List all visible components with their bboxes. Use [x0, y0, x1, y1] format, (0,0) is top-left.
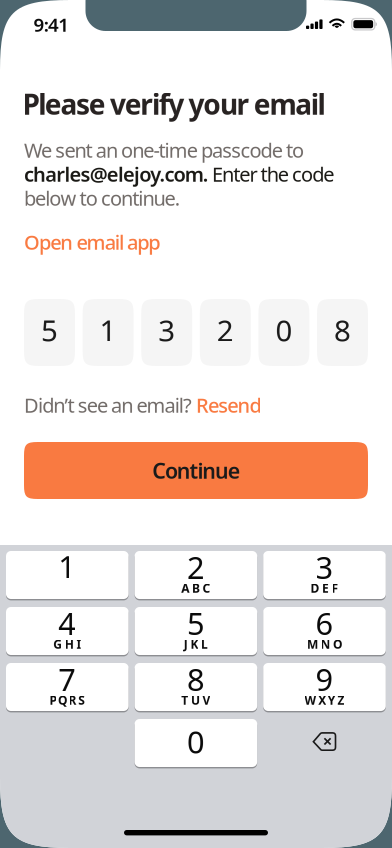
button[interactable]: 9	[263, 663, 386, 712]
button[interactable]: 5	[135, 607, 257, 656]
staticText: Z	[337, 692, 344, 708]
button[interactable]: 7	[6, 663, 129, 712]
button[interactable]: Resend	[196, 392, 261, 418]
staticText: 1	[100, 310, 117, 349]
staticText: charles@elejoy.com. Enter the code	[24, 161, 334, 187]
staticText: T	[181, 692, 188, 708]
staticText: I	[76, 636, 81, 652]
staticText: A	[181, 580, 189, 596]
staticText: 1	[58, 546, 76, 587]
staticText: U	[191, 692, 200, 708]
staticText: Didn’t see an email?	[24, 392, 196, 418]
staticText: K	[190, 636, 198, 652]
staticText: F	[332, 580, 339, 596]
button[interactable]: 8	[135, 663, 257, 712]
staticText: Open email app	[24, 229, 160, 255]
staticText: 3	[315, 547, 333, 587]
staticText: V	[202, 692, 210, 708]
staticText: Q	[58, 692, 67, 708]
staticText: D	[310, 580, 319, 596]
staticText: 9	[315, 659, 333, 699]
button[interactable]: Open email app	[24, 231, 174, 253]
staticText: L	[201, 636, 208, 652]
staticText: B	[192, 580, 200, 596]
staticText: S	[78, 692, 85, 708]
staticText: Resend	[196, 392, 261, 418]
staticText: M	[307, 636, 318, 652]
staticText: E	[322, 580, 329, 596]
staticText: 9:41	[34, 12, 69, 37]
button[interactable]: 6	[263, 607, 386, 656]
staticText: X	[318, 692, 326, 708]
button[interactable]: 4	[6, 607, 129, 656]
staticText: 7	[58, 659, 76, 699]
button[interactable]: 1	[6, 551, 129, 600]
staticText: O	[333, 636, 342, 652]
staticText: 4	[58, 603, 76, 643]
button[interactable]: 0	[135, 719, 257, 768]
staticText: Please verify your email	[22, 85, 325, 123]
staticText: 2	[187, 547, 205, 587]
staticText: Y	[328, 692, 336, 708]
button[interactable]: Continue	[24, 442, 368, 499]
button[interactable]: 2	[135, 551, 257, 600]
staticText: We sent an one-time passcode to	[24, 137, 304, 163]
staticText: 5	[187, 603, 205, 643]
button[interactable]: Delete	[263, 719, 386, 768]
staticText: 8	[187, 659, 205, 699]
staticText: 6	[315, 603, 333, 643]
staticText: G	[53, 636, 62, 652]
staticText: 2	[217, 310, 234, 349]
staticText: 8	[334, 310, 351, 349]
staticText: below to continue.	[24, 185, 180, 211]
staticText: H	[65, 636, 74, 652]
staticText: 3	[158, 310, 175, 349]
staticText: 5	[41, 310, 58, 349]
staticText: Continue	[152, 456, 240, 485]
staticText: 0	[275, 310, 292, 349]
staticText: R	[69, 692, 77, 708]
staticText: 0	[187, 721, 205, 762]
staticText: P	[49, 692, 56, 708]
staticText: C	[202, 580, 210, 596]
staticText: W	[305, 692, 317, 708]
staticText: J	[184, 636, 188, 652]
button[interactable]: 3	[263, 551, 386, 600]
staticText: N	[320, 636, 330, 652]
